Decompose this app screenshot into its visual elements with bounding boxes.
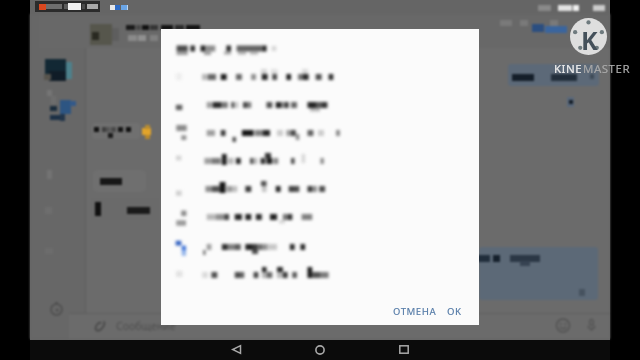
button[interactable]: [161, 178, 479, 206]
staticText: MASTER: [583, 61, 631, 77]
button[interactable]: Home: [315, 345, 325, 355]
button[interactable]: Back: [232, 345, 241, 354]
staticText: K: [581, 23, 598, 57]
button[interactable]: [161, 236, 479, 264]
button[interactable]: OK: [439, 297, 470, 326]
staticText: KINE: [554, 61, 583, 77]
button[interactable]: Recents: [399, 345, 409, 354]
button[interactable]: [161, 150, 479, 178]
button[interactable]: [161, 206, 479, 234]
staticText: OK: [447, 305, 462, 318]
button[interactable]: ОТМЕНА: [385, 297, 445, 326]
button[interactable]: [161, 94, 479, 122]
button[interactable]: [161, 66, 479, 94]
staticText: ОТМЕНА: [393, 305, 437, 318]
staticText: Сообщение: [116, 319, 176, 333]
button[interactable]: [161, 122, 479, 150]
button[interactable]: [161, 264, 479, 292]
